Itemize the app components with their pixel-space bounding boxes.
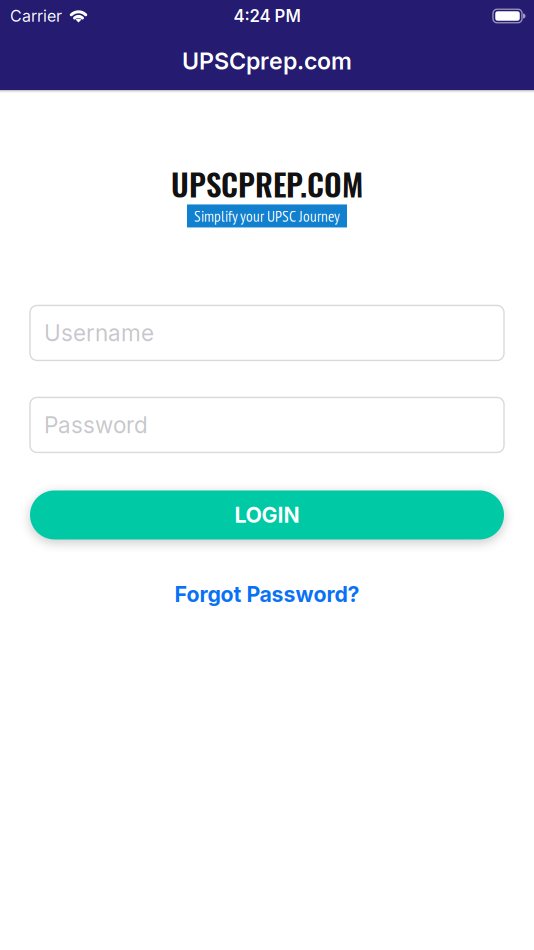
staticText: UPSCPREP.COM [171, 161, 363, 206]
staticText: Password [44, 411, 148, 439]
staticText: Simplify your UPSC Journey [194, 206, 340, 226]
button[interactable]: Forgot Password? [174, 581, 359, 607]
button[interactable]: LOGIN [30, 490, 504, 539]
staticText: UPSCprep.com [182, 47, 352, 75]
staticText: LOGIN [234, 502, 299, 528]
staticText: Forgot Password? [174, 581, 359, 607]
staticText: Username [44, 319, 154, 347]
staticText: Carrier [10, 6, 62, 26]
staticText: 4:24 PM [233, 6, 300, 26]
